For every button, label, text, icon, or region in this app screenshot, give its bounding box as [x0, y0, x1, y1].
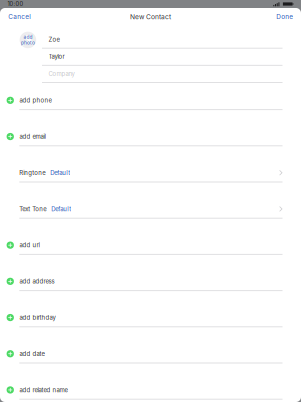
button[interactable]: Ringtone [0, 155, 301, 191]
staticText: New Contact [130, 13, 171, 21]
staticText: Company [49, 70, 75, 77]
staticText: Default [50, 169, 70, 176]
staticText: 10:00 [7, 0, 23, 7]
staticText: add url [19, 241, 39, 249]
staticText: Ringtone [19, 169, 45, 176]
staticText: Taylor [49, 53, 65, 60]
button[interactable]: add address [0, 264, 301, 300]
button[interactable]: add url [0, 227, 301, 264]
staticText: Cancel [8, 13, 31, 20]
button[interactable]: add related name [0, 372, 301, 402]
staticText: add phone [19, 97, 51, 104]
staticText: Text Tone [19, 205, 46, 213]
staticText: add email [19, 133, 45, 140]
staticText: add birthday [19, 314, 55, 321]
staticText: add related name [19, 386, 67, 394]
button[interactable]: add birthday [0, 300, 301, 336]
button[interactable]: add phone [0, 83, 301, 119]
staticText: Done [276, 13, 293, 20]
staticText: Default [51, 205, 71, 213]
staticText: add address [19, 278, 54, 285]
button[interactable]: Add photo [20, 32, 36, 48]
staticText: Zoe [49, 36, 60, 43]
button[interactable]: Cancel [0, 10, 39, 23]
button[interactable]: Done [268, 10, 301, 23]
staticText: photo [21, 40, 35, 46]
staticText: add date [19, 350, 44, 357]
button[interactable]: Text Tone [0, 191, 301, 227]
button[interactable]: add date [0, 336, 301, 372]
staticText: add [23, 34, 32, 40]
button[interactable]: add email [0, 119, 301, 155]
